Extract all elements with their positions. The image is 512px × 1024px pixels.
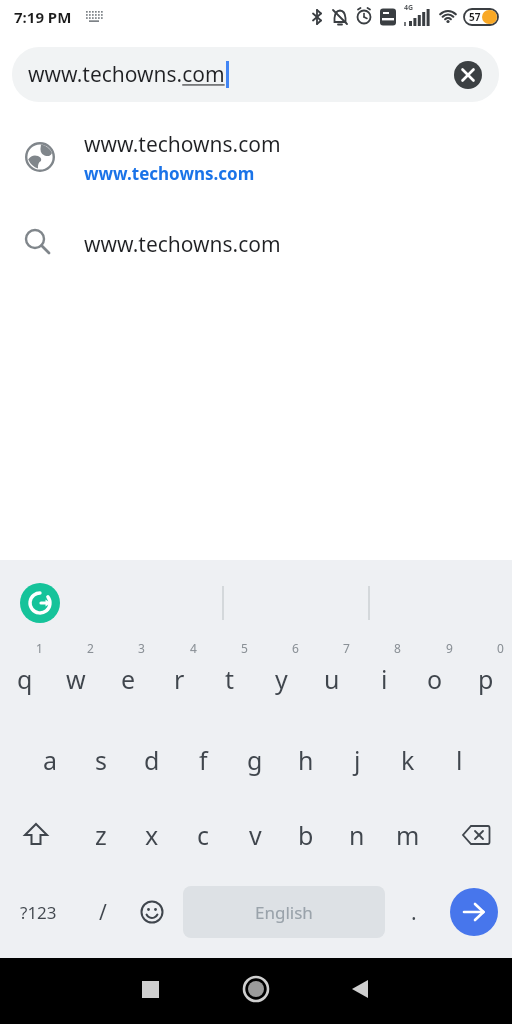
staticText: 7 [343,640,350,656]
staticText: 1 [36,640,43,656]
staticText: www.techowns.com [84,162,255,185]
button[interactable]: o [410,651,460,707]
staticText: f [199,743,208,777]
staticText: www.techowns.com [28,60,225,89]
button[interactable]: www.techowns.com [0,119,512,195]
staticText: w [66,662,86,696]
staticText: d [144,743,160,777]
staticText: 9 [446,640,453,656]
staticText: l [456,743,463,777]
staticText: / [99,898,107,927]
staticText: 4 [190,640,197,656]
button[interactable]: www.techowns.com [0,214,512,270]
staticText: v [249,818,262,852]
button[interactable] [342,971,378,1007]
button[interactable]: x [127,807,177,863]
staticText: c [197,818,210,852]
staticText: e [121,662,136,696]
button[interactable]: y [256,651,306,707]
staticText: o [427,662,443,696]
staticText: m [396,818,420,852]
staticText: k [401,743,415,777]
button[interactable]: a [25,732,75,788]
button[interactable]: u [307,651,357,707]
staticText: www.techowns.com [84,130,281,159]
staticText: r [174,662,185,696]
staticText: a [43,743,58,777]
button[interactable]: d [127,732,177,788]
button[interactable]: j [332,732,382,788]
button[interactable] [20,583,60,623]
staticText: b [298,818,314,852]
button[interactable]: f [178,732,228,788]
button[interactable] [454,61,482,89]
staticText: g [247,743,263,777]
button[interactable]: t [205,651,255,707]
staticText: q [17,662,33,696]
button[interactable]: b [281,807,331,863]
staticText: 5 [241,640,248,656]
staticText: 0 [497,640,504,656]
staticText: ?123 [20,901,57,924]
button[interactable] [238,971,274,1007]
staticText: j [354,743,361,777]
button[interactable]: e [103,651,153,707]
staticText: 7:19 PM [14,7,72,27]
button[interactable]: i [359,651,409,707]
staticText: 6 [292,640,299,656]
staticText: z [95,818,107,852]
staticText: 57 [469,10,481,24]
button[interactable]: l [434,732,484,788]
staticText: p [478,662,494,696]
button[interactable] [132,971,168,1007]
button[interactable]: s [76,732,126,788]
button[interactable] [10,807,62,863]
staticText: y [275,662,288,696]
button[interactable] [129,885,175,939]
staticText: 4G [404,3,414,13]
button[interactable]: q [0,651,50,707]
button[interactable]: h [281,732,331,788]
button[interactable]: w [51,651,101,707]
staticText: t [225,662,235,696]
staticText: . [411,898,417,927]
staticText: 8 [394,640,401,656]
staticText: English [255,901,313,924]
button[interactable]: www.techowns.com [12,47,499,102]
button[interactable]: . [396,885,432,939]
button[interactable]: c [178,807,228,863]
staticText: s [95,743,107,777]
button[interactable] [450,888,498,936]
button[interactable]: z [76,807,126,863]
staticText: 3 [138,640,145,656]
staticText: n [349,818,365,852]
button[interactable]: g [230,732,280,788]
staticText: www.techowns.com [84,230,281,259]
button[interactable]: / [80,885,126,939]
button[interactable]: m [383,807,433,863]
button[interactable]: ?123 [12,885,64,939]
button[interactable]: n [332,807,382,863]
button[interactable]: English [183,886,385,938]
staticText: 2 [87,640,94,656]
button[interactable]: r [154,651,204,707]
staticText: i [381,662,388,696]
staticText: x [145,818,159,852]
staticText: u [324,662,340,696]
button[interactable]: k [383,732,433,788]
staticText: h [298,743,314,777]
button[interactable]: p [461,651,511,707]
button[interactable] [450,807,502,863]
button[interactable]: v [230,807,280,863]
